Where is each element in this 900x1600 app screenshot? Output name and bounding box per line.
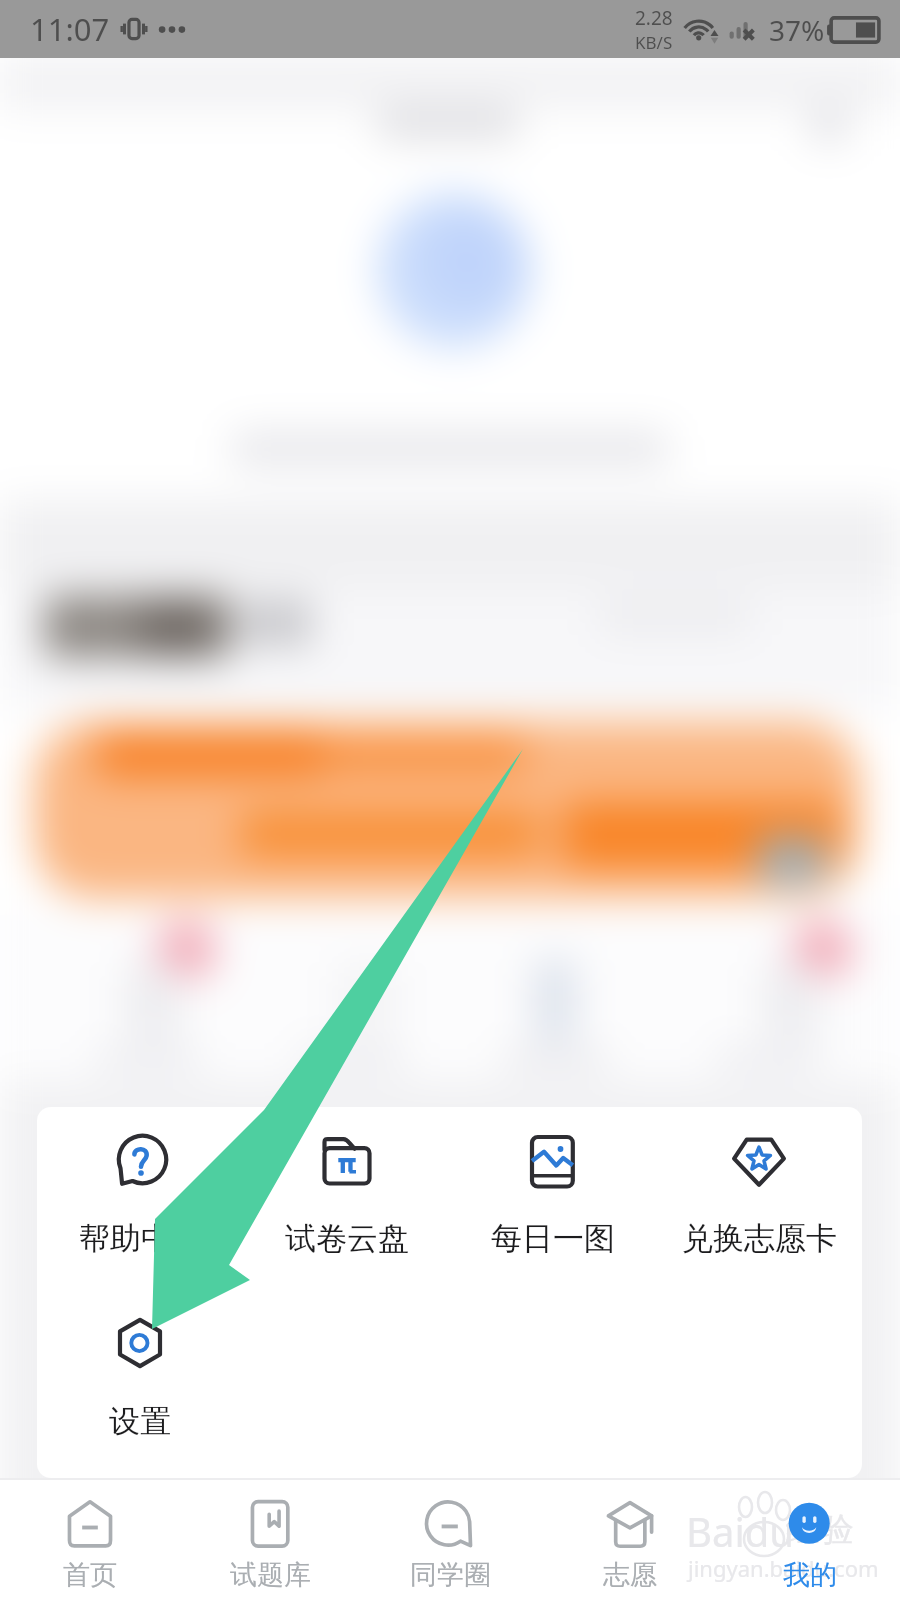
staticText: 帮助中心 — [79, 1219, 203, 1258]
button[interactable]: 每日一图 — [450, 1131, 656, 1258]
staticText: 试题库 — [230, 1558, 311, 1592]
button[interactable]: 兑换志愿卡 — [656, 1131, 862, 1258]
staticText: 我的 — [783, 1558, 837, 1592]
button[interactable]: 设置 — [37, 1314, 243, 1441]
staticText: 11:07 — [30, 8, 110, 50]
staticText: 2.28 — [635, 5, 673, 31]
button[interactable]: 同学圈 — [360, 1488, 540, 1592]
button[interactable]: 我的 — [720, 1488, 900, 1592]
staticText: 同学圈 — [410, 1558, 491, 1592]
staticText: 设置 — [109, 1402, 171, 1441]
staticText: Baidu — [686, 1504, 795, 1558]
button[interactable]: 试题库 — [180, 1488, 360, 1592]
staticText: jingyan.baidu.com — [688, 1553, 879, 1583]
button[interactable]: 试卷云盘 — [244, 1131, 450, 1258]
staticText: 经验 — [786, 1508, 854, 1551]
staticText: 兑换志愿卡 — [682, 1219, 837, 1258]
staticText: 志愿 — [603, 1558, 657, 1592]
staticText: 首页 — [63, 1558, 117, 1592]
staticText: 37% — [769, 11, 825, 49]
staticText: KB/S — [635, 31, 673, 54]
button[interactable]: 首页 — [0, 1488, 180, 1592]
button[interactable]: 志愿 — [540, 1488, 720, 1592]
staticText: 试卷云盘 — [285, 1219, 409, 1258]
button[interactable]: 帮助中心 — [37, 1131, 244, 1258]
staticText: 每日一图 — [491, 1219, 615, 1258]
